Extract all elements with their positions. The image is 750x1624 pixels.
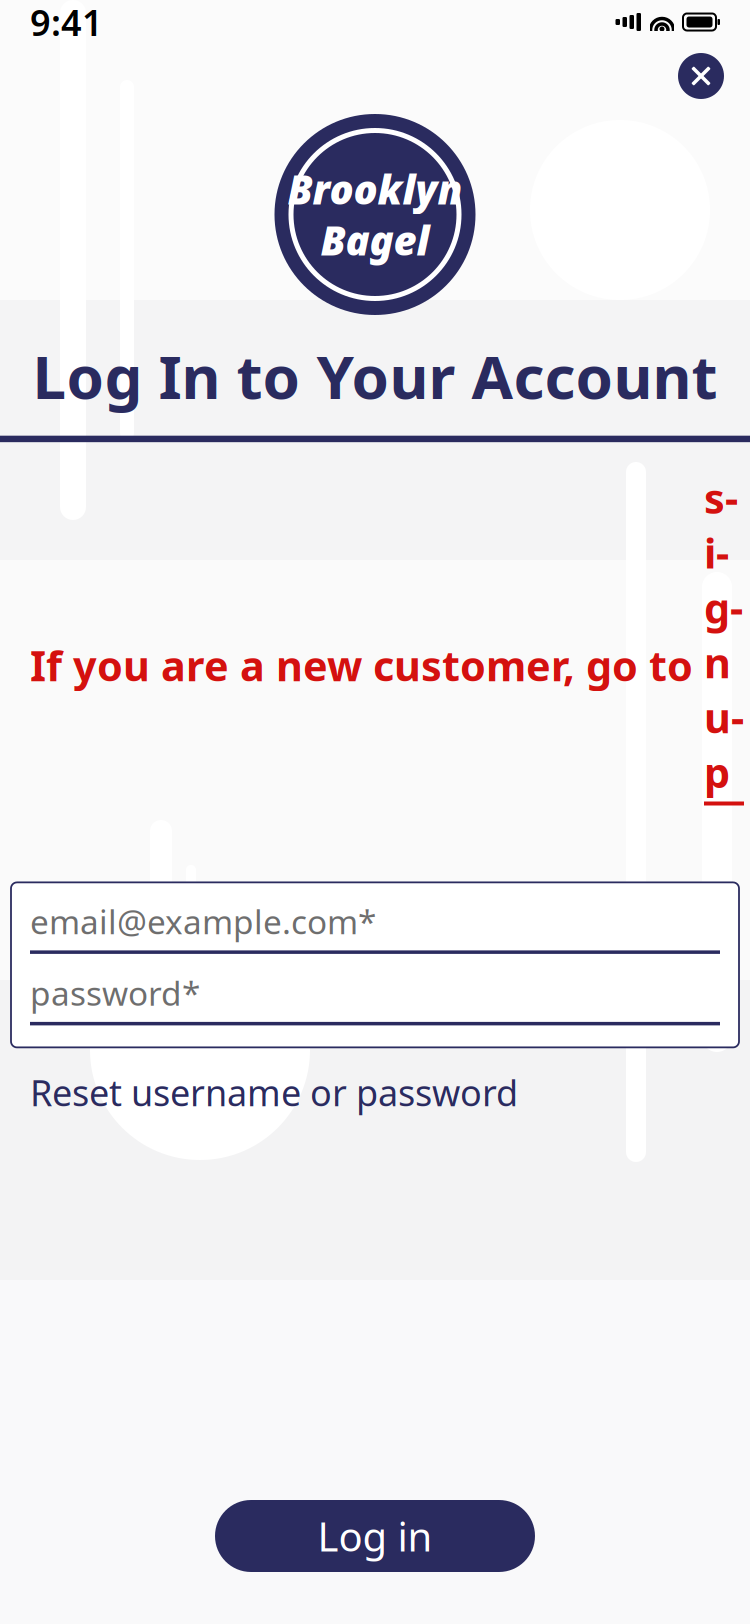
staticText: Brooklyn	[287, 162, 462, 215]
button[interactable]: Reset username or password	[0, 1068, 750, 1116]
staticText: Bagel	[320, 213, 429, 267]
staticText: sign up	[704, 470, 744, 799]
staticText: If you are a new customer, go to	[30, 638, 704, 693]
staticText: 9:41	[30, 0, 103, 46]
button[interactable]: Log in	[215, 1500, 535, 1572]
staticText: Log in	[317, 1509, 432, 1562]
button[interactable]: password*	[30, 976, 720, 1025]
staticText: email@example.com*	[30, 899, 376, 944]
staticText: Reset username or password	[30, 1068, 518, 1116]
button[interactable]: Close	[678, 53, 724, 99]
button[interactable]: email@example.com*	[30, 904, 720, 954]
staticText: Log In to Your Account	[32, 336, 717, 416]
staticText: password*	[30, 971, 200, 1015]
button[interactable]: sign up	[704, 470, 744, 860]
